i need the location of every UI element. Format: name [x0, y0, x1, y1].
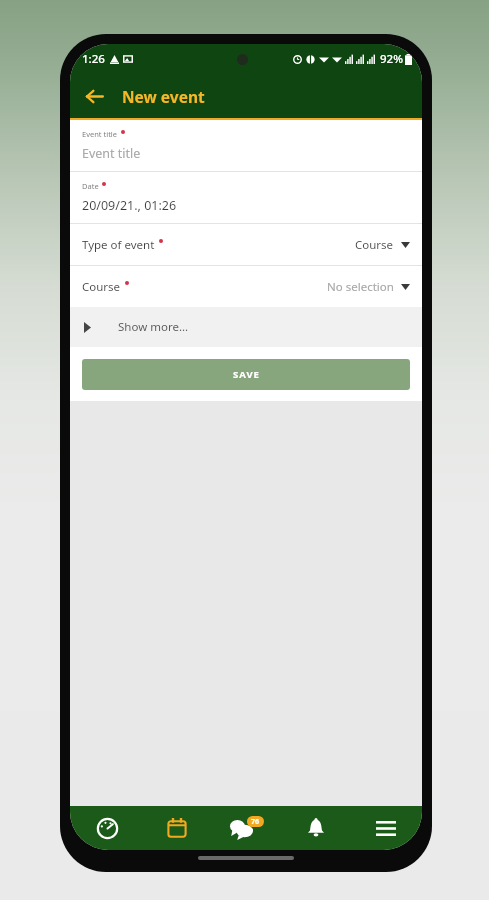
staticText: 20/09/21., 01:26	[82, 197, 177, 214]
button[interactable]: Type of event	[70, 224, 422, 265]
staticText: 1:26	[82, 51, 105, 67]
button[interactable]: Menu	[353, 806, 418, 850]
button[interactable]: Calendar	[144, 806, 209, 850]
staticText: No selection	[327, 279, 394, 295]
staticText: New event	[122, 86, 205, 107]
staticText: Type of event	[82, 237, 155, 253]
button[interactable]: SAVE	[82, 359, 410, 390]
button[interactable]: Messages, 76 unread	[214, 806, 279, 850]
button[interactable]: Date	[70, 172, 422, 223]
button[interactable]: Event title	[70, 120, 422, 171]
staticText: Date	[82, 181, 99, 191]
button[interactable]: Back	[76, 78, 112, 114]
button[interactable]: Show more...	[70, 307, 422, 347]
button[interactable]: Course	[70, 266, 422, 307]
staticText: Event title	[82, 129, 118, 139]
staticText: 76	[251, 817, 260, 827]
staticText: SAVE	[233, 368, 260, 381]
button[interactable]: Notifications	[283, 806, 348, 850]
button[interactable]: Dashboard	[75, 806, 140, 850]
staticText: 92%	[380, 51, 403, 67]
staticText: Course	[82, 279, 121, 295]
staticText: Course	[355, 237, 394, 253]
staticText: Show more...	[118, 319, 189, 335]
staticText: Event title	[82, 145, 141, 162]
